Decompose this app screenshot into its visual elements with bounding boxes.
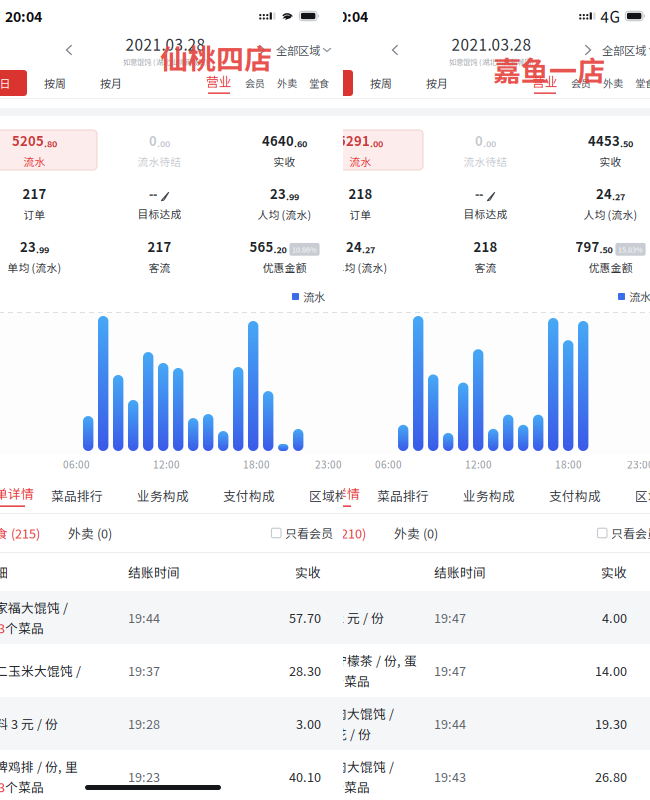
staticText: 06:00 <box>375 457 402 471</box>
staticText: 订单详情 <box>0 484 34 502</box>
button[interactable]: 外卖 <box>271 76 303 90</box>
staticText: 19:47 <box>434 661 466 680</box>
staticText: 4G <box>600 5 620 27</box>
staticText: 19:37 <box>128 661 160 680</box>
button[interactable]: 按周 <box>27 69 83 97</box>
staticText: 2021.03.28 <box>451 33 531 55</box>
staticText: 优惠金额 <box>262 260 306 275</box>
staticText: 菜品排行 <box>51 486 103 505</box>
staticText: 人均 (流水) <box>257 207 311 222</box>
button[interactable]: Next day <box>251 38 273 62</box>
staticText: 217 <box>22 184 46 203</box>
button[interactable]: 按周 <box>353 69 409 97</box>
button[interactable]: 堂食 (210) <box>298 524 366 542</box>
staticText: 张家福大馄饨 / <box>0 598 68 616</box>
button[interactable]: 业务构成 <box>120 486 206 505</box>
staticText: 实收 <box>599 154 621 169</box>
button[interactable]: 菜品排行 <box>360 486 446 505</box>
button[interactable]: 外卖 (0) <box>40 524 112 542</box>
staticText: .60 <box>294 137 307 150</box>
button[interactable]: 订单详情 <box>0 484 34 507</box>
staticText: 堂食 (210) <box>308 524 366 542</box>
staticText: 堂食 <box>635 76 650 90</box>
staticText: 支付构成 <box>223 486 275 505</box>
staticText: 18:00 <box>243 457 270 471</box>
staticText: 单均 (流水) <box>7 260 61 275</box>
button[interactable]: 区域构成 <box>618 486 650 505</box>
staticText: 业务构成 <box>463 486 515 505</box>
button[interactable]: Previous day <box>384 38 406 62</box>
button[interactable]: 只看会员 <box>597 524 650 542</box>
button[interactable]: 营业 <box>199 72 239 94</box>
button[interactable]: Previous day <box>58 38 80 62</box>
staticText: 个菜品 <box>331 671 370 690</box>
staticText: 0 <box>149 131 157 150</box>
button[interactable]: 支付构成 <box>532 486 618 505</box>
staticText: 明细 <box>308 563 334 581</box>
button[interactable]: 会员 <box>239 76 271 90</box>
staticText: 20:04 <box>5 6 42 26</box>
staticText: 结账时间 <box>434 563 486 581</box>
staticText: .00 <box>483 137 496 150</box>
staticText: 等 <box>308 777 324 796</box>
staticText: 5205 <box>12 131 44 150</box>
staticText: 实收 <box>273 154 295 169</box>
button[interactable]: 业务构成 <box>446 486 532 505</box>
staticText: 19:28 <box>128 714 160 733</box>
staticText: 玉米花 / 份 <box>308 724 371 743</box>
button[interactable]: 堂食 <box>303 76 335 90</box>
button[interactable]: 营业 <box>525 72 565 94</box>
staticText: 等 <box>308 671 324 690</box>
staticText: 堂食 <box>309 76 329 90</box>
staticText: .00 <box>370 137 383 150</box>
staticText: 结账时间 <box>128 563 180 581</box>
staticText: 客流 <box>474 260 496 275</box>
staticText: 如意馄饨 (湖北仙桃新城店) <box>123 56 208 67</box>
staticText: 24 <box>596 184 612 203</box>
button[interactable]: 堂食 <box>629 76 650 90</box>
staticText: 按日 <box>314 75 336 91</box>
staticText: 0 <box>475 131 483 150</box>
button[interactable]: 区域构成 <box>292 486 378 505</box>
staticText: 4.00 <box>602 608 627 627</box>
staticText: 流水 <box>629 288 650 305</box>
button[interactable]: 按日 <box>0 70 27 96</box>
staticText: 实收 <box>601 563 627 581</box>
button[interactable]: 只看会员 <box>271 524 333 542</box>
button[interactable]: 会员 <box>565 76 597 90</box>
staticText: 3 <box>0 777 5 796</box>
staticText: 3 <box>0 618 5 637</box>
staticText: 明细 <box>0 563 8 581</box>
button[interactable]: 支付构成 <box>206 486 292 505</box>
button[interactable]: 全部区域 <box>273 42 331 58</box>
staticText: .27 <box>612 190 625 203</box>
button[interactable]: 时段构成 <box>378 486 464 505</box>
staticText: 外卖 (0) <box>394 524 438 542</box>
staticText: 流水 <box>23 154 45 169</box>
staticText: 5291 <box>338 131 370 150</box>
staticText: 流水待结 <box>463 154 507 169</box>
staticText: 12:00 <box>465 457 492 471</box>
button[interactable]: 按月 <box>83 69 139 97</box>
staticText: 区域构成 <box>309 486 361 505</box>
button[interactable]: 按月 <box>409 69 465 97</box>
staticText: 鲜羊肉大馄饨 / <box>308 757 394 775</box>
staticText: 客流 <box>148 260 170 275</box>
button[interactable]: 按日 <box>298 70 353 96</box>
staticText: 按月 <box>426 75 448 91</box>
staticText: 全部区域 <box>276 42 320 58</box>
staticText: 3.00 <box>296 714 321 733</box>
button[interactable]: 堂食 (215) <box>0 524 40 542</box>
staticText: 个菜品 <box>5 618 44 637</box>
staticText: 时段构成 <box>395 486 447 505</box>
button[interactable]: Next day <box>577 38 599 62</box>
button[interactable]: 菜品排行 <box>34 486 120 505</box>
button[interactable]: 全部区域 <box>599 42 650 58</box>
button[interactable]: 外卖 (0) <box>366 524 438 542</box>
staticText: .27 <box>362 243 375 256</box>
staticText: 218 <box>348 184 372 203</box>
button[interactable]: 外卖 <box>597 76 629 90</box>
button[interactable]: 订单详情 <box>298 484 360 507</box>
